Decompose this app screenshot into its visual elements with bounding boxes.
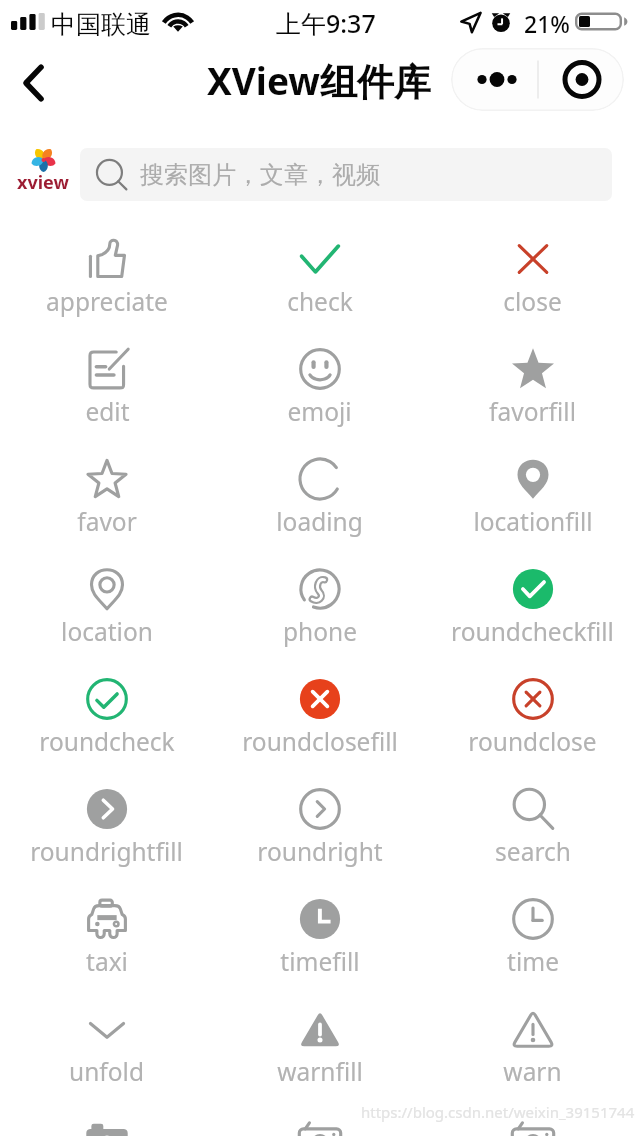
staticText: warnfill bbox=[277, 1055, 363, 1088]
button[interactable]: time bbox=[426, 892, 639, 988]
staticText: loading bbox=[276, 505, 363, 538]
staticText: roundcheck bbox=[39, 725, 175, 758]
staticText: 中国联通 bbox=[51, 9, 151, 40]
button[interactable]: appreciate bbox=[0, 232, 213, 328]
button[interactable]: loading bbox=[213, 452, 426, 548]
button[interactable]: roundcheck bbox=[0, 672, 213, 768]
staticText: roundright bbox=[257, 835, 383, 868]
button[interactable]: camera bbox=[213, 1112, 426, 1136]
staticText: roundcheckfill bbox=[451, 615, 614, 648]
button[interactable]: warnfill bbox=[213, 1002, 426, 1098]
button[interactable]: close bbox=[426, 232, 639, 328]
button[interactable]: phone bbox=[213, 562, 426, 658]
button[interactable]: roundright bbox=[213, 782, 426, 878]
button[interactable]: search bbox=[426, 782, 639, 878]
button[interactable]: edit bbox=[0, 342, 213, 438]
staticText: roundclose bbox=[468, 725, 597, 758]
button[interactable]: roundclosefill bbox=[213, 672, 426, 768]
staticText: unfold bbox=[69, 1055, 144, 1088]
button[interactable]: roundrightfill bbox=[0, 782, 213, 878]
button[interactable]: 搜索图片，文章，视频 bbox=[80, 148, 612, 201]
button[interactable]: locationfill bbox=[426, 452, 639, 548]
button[interactable]: roundclose bbox=[426, 672, 639, 768]
staticText: search bbox=[495, 835, 571, 868]
button[interactable]: roundcheckfill bbox=[426, 562, 639, 658]
staticText: XView组件库 bbox=[207, 55, 431, 106]
staticText: 21% bbox=[524, 8, 570, 39]
staticText: warn bbox=[503, 1055, 562, 1088]
staticText: xview bbox=[17, 170, 69, 195]
staticText: close bbox=[503, 285, 562, 318]
button[interactable]: Back bbox=[8, 58, 58, 108]
button[interactable]: camerafill bbox=[0, 1112, 213, 1136]
staticText: timefill bbox=[280, 945, 360, 978]
button[interactable]: warn bbox=[426, 1002, 639, 1098]
staticText: https://blog.csdn.net/weixin_39151744 bbox=[361, 1102, 635, 1122]
staticText: taxi bbox=[86, 945, 128, 978]
button[interactable]: camerarotate bbox=[426, 1112, 639, 1136]
staticText: emoji bbox=[287, 395, 352, 428]
staticText: edit bbox=[85, 395, 130, 428]
staticText: roundrightfill bbox=[30, 835, 183, 868]
button[interactable]: Mini program menu bbox=[451, 48, 624, 111]
button[interactable]: timefill bbox=[213, 892, 426, 988]
staticText: favorfill bbox=[489, 395, 576, 428]
staticText: roundclosefill bbox=[242, 725, 398, 758]
staticText: location bbox=[61, 615, 153, 648]
staticText: time bbox=[507, 945, 559, 978]
button[interactable]: location bbox=[0, 562, 213, 658]
staticText: favor bbox=[77, 505, 137, 538]
staticText: 搜索图片，文章，视频 bbox=[140, 160, 380, 190]
staticText: locationfill bbox=[473, 505, 593, 538]
staticText: 上午9:37 bbox=[276, 6, 376, 40]
button[interactable]: check bbox=[213, 232, 426, 328]
staticText: appreciate bbox=[46, 285, 168, 318]
button[interactable]: emoji bbox=[213, 342, 426, 438]
button[interactable]: taxi bbox=[0, 892, 213, 988]
staticText: check bbox=[287, 285, 353, 318]
button[interactable]: favorfill bbox=[426, 342, 639, 438]
staticText: phone bbox=[283, 615, 357, 648]
button[interactable]: unfold bbox=[0, 1002, 213, 1098]
button[interactable]: favor bbox=[0, 452, 213, 548]
